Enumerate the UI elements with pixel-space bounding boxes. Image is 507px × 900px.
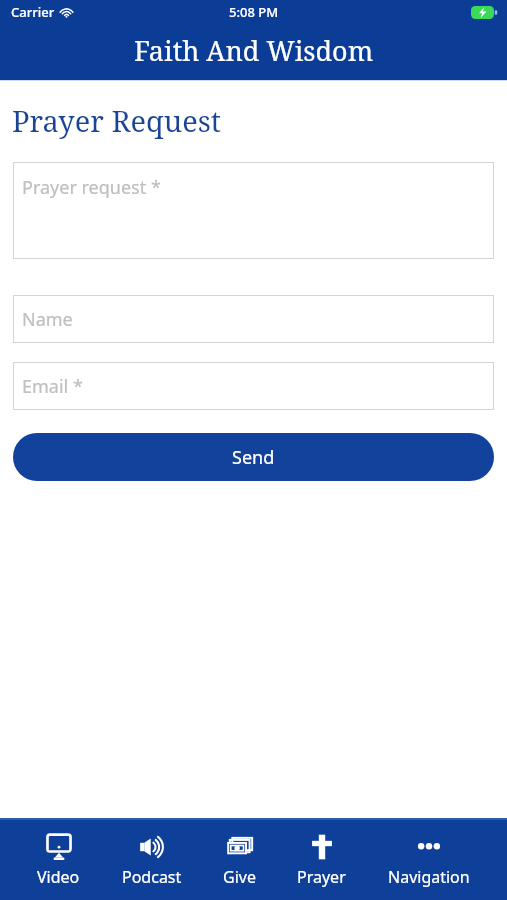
button[interactable]: Prayer request * (13, 162, 494, 259)
staticText: Carrier (11, 3, 55, 21)
staticText: Email * (22, 374, 83, 399)
button[interactable]: Navigation (384, 833, 474, 888)
button[interactable]: Podcast (118, 833, 186, 888)
button[interactable]: Email * (13, 362, 494, 410)
staticText: Give (223, 866, 256, 888)
button[interactable]: Video (33, 833, 84, 888)
staticText: Faith And Wisdom (134, 32, 374, 69)
staticText: Send (232, 445, 275, 470)
button[interactable]: Send (13, 433, 494, 481)
staticText: Prayer request * (22, 175, 161, 200)
button[interactable]: Name (13, 295, 494, 343)
staticText: Navigation (388, 866, 470, 888)
button[interactable]: Prayer (293, 833, 350, 888)
staticText: Prayer (297, 866, 346, 888)
staticText: Name (22, 307, 73, 332)
staticText: Podcast (122, 866, 182, 888)
staticText: 5:08 PM (229, 3, 279, 21)
staticText: Prayer Request (12, 101, 222, 140)
button[interactable]: Give (219, 833, 260, 888)
staticText: Video (37, 866, 80, 888)
